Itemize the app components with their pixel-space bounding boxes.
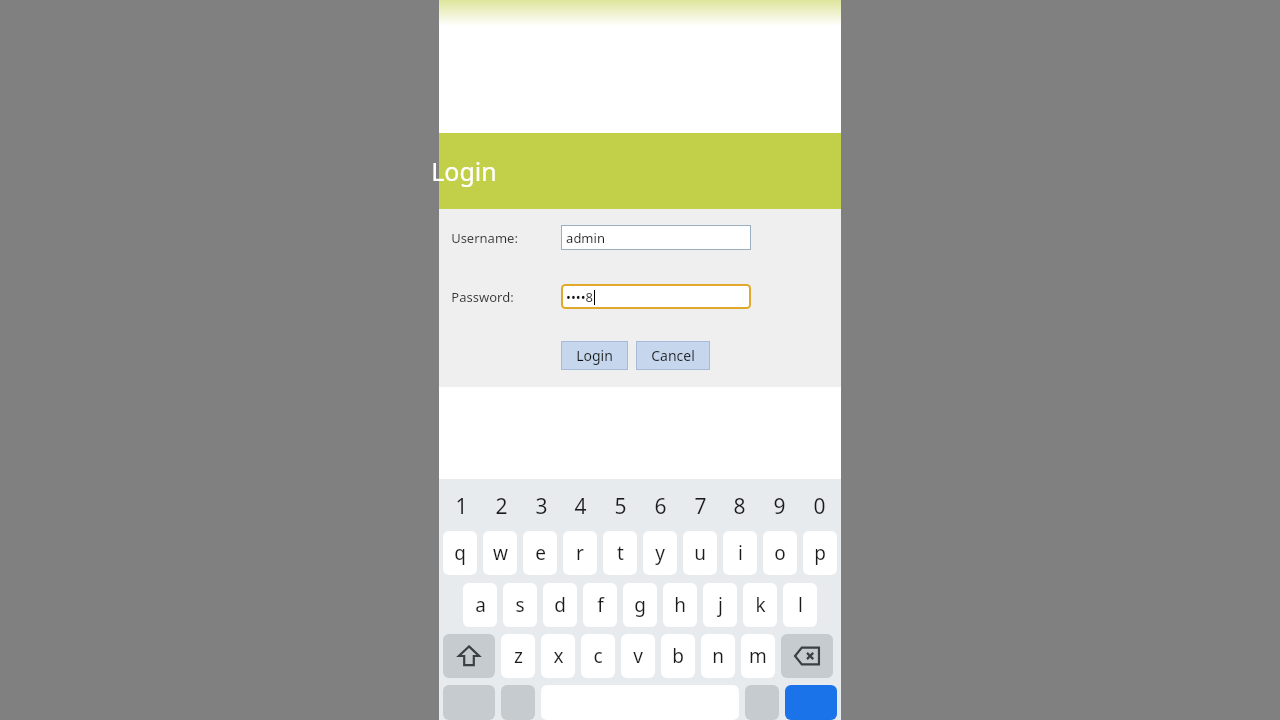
button[interactable]: ••••8 — [561, 284, 751, 309]
button[interactable]: x — [541, 634, 575, 678]
staticText: b — [672, 643, 684, 669]
button[interactable]: i — [723, 531, 757, 575]
staticText: e — [535, 540, 546, 566]
staticText: k — [755, 592, 766, 618]
staticText: i — [738, 540, 743, 566]
button[interactable]: u — [683, 531, 717, 575]
button[interactable]: 1 — [443, 485, 479, 527]
button[interactable]: Emoji — [501, 685, 535, 720]
button[interactable]: Shift — [443, 634, 495, 678]
button[interactable]: n — [701, 634, 735, 678]
button[interactable]: g — [623, 583, 657, 627]
staticText: 3 — [535, 492, 548, 521]
staticText: 1 — [455, 492, 468, 521]
staticText: w — [493, 540, 508, 566]
staticText: r — [576, 540, 584, 566]
button[interactable]: e — [523, 531, 557, 575]
button[interactable]: k — [743, 583, 777, 627]
staticText: 6 — [654, 492, 667, 521]
button[interactable]: j — [703, 583, 737, 627]
button[interactable]: 8 — [721, 485, 757, 527]
staticText: p — [814, 540, 826, 566]
staticText: Login — [576, 346, 613, 365]
button[interactable]: Enter — [785, 685, 837, 720]
button[interactable]: y — [643, 531, 677, 575]
staticText: Login — [431, 154, 497, 188]
button[interactable]: 2 — [483, 485, 519, 527]
button[interactable]: z — [501, 634, 535, 678]
staticText: 5 — [614, 492, 627, 521]
button[interactable]: Symbols — [443, 685, 495, 720]
staticText: g — [634, 592, 646, 618]
staticText: Username: — [451, 229, 518, 247]
button[interactable]: o — [763, 531, 797, 575]
button[interactable]: Login — [561, 341, 628, 370]
button[interactable]: m — [741, 634, 775, 678]
staticText: s — [515, 592, 525, 618]
staticText: ••••8 — [566, 288, 593, 306]
staticText: u — [694, 540, 706, 566]
staticText: q — [454, 540, 466, 566]
staticText: l — [798, 592, 803, 618]
staticText: 7 — [694, 492, 707, 521]
staticText: Cancel — [651, 346, 695, 365]
button[interactable]: 6 — [642, 485, 678, 527]
button[interactable]: 4 — [562, 485, 598, 527]
button[interactable]: 3 — [523, 485, 559, 527]
button[interactable]: f — [583, 583, 617, 627]
button[interactable]: d — [543, 583, 577, 627]
button[interactable]: w — [483, 531, 517, 575]
staticText: h — [674, 592, 686, 618]
staticText: v — [633, 643, 643, 669]
staticText: o — [774, 540, 786, 566]
staticText: a — [475, 592, 486, 618]
staticText: 2 — [495, 492, 508, 521]
button[interactable]: q — [443, 531, 477, 575]
button[interactable]: c — [581, 634, 615, 678]
staticText: x — [553, 643, 564, 669]
staticText: 9 — [773, 492, 786, 521]
button[interactable]: l — [783, 583, 817, 627]
staticText: t — [617, 540, 624, 566]
button[interactable]: t — [603, 531, 637, 575]
button[interactable]: v — [621, 634, 655, 678]
button[interactable]: 0 — [801, 485, 837, 527]
button[interactable]: Backspace — [781, 634, 833, 678]
button[interactable]: 5 — [602, 485, 638, 527]
button[interactable]: b — [661, 634, 695, 678]
staticText: admin — [566, 229, 605, 247]
button[interactable]: h — [663, 583, 697, 627]
staticText: d — [554, 592, 566, 618]
staticText: 4 — [574, 492, 587, 521]
button[interactable]: Cancel — [636, 341, 710, 370]
button[interactable]: p — [803, 531, 837, 575]
staticText: f — [597, 592, 604, 618]
staticText: m — [749, 643, 767, 669]
staticText: n — [712, 643, 724, 669]
button[interactable]: s — [503, 583, 537, 627]
staticText: c — [593, 643, 603, 669]
staticText: z — [514, 643, 523, 669]
button[interactable]: admin — [561, 225, 751, 250]
staticText: j — [718, 592, 723, 618]
staticText: 0 — [813, 492, 826, 521]
button[interactable]: r — [563, 531, 597, 575]
staticText: 8 — [733, 492, 746, 521]
staticText: Password: — [451, 288, 514, 306]
button[interactable]: a — [463, 583, 497, 627]
staticText: y — [655, 540, 665, 566]
button[interactable]: 7 — [682, 485, 718, 527]
button[interactable]: 9 — [761, 485, 797, 527]
button[interactable]: Period — [745, 685, 779, 720]
